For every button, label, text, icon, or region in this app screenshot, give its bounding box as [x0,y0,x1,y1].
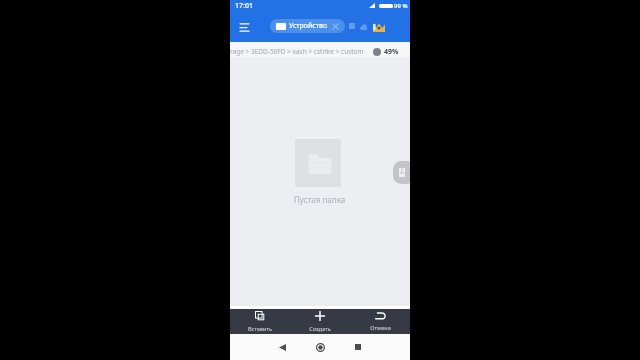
staticText: 17:01 [235,1,253,11]
button[interactable]: Вставить [230,309,290,334]
button[interactable]: Open navigation menu [234,17,254,37]
button[interactable]: Back [272,334,293,360]
staticText: Устройство [289,21,328,31]
staticText: Создать [309,325,331,332]
staticText: 49% [384,47,399,57]
button[interactable]: Recent apps [347,334,368,360]
staticText: Отмена [370,324,391,331]
button[interactable]: Sort files [393,161,410,184]
staticText: Пустая папка [294,194,346,205]
button[interactable]: Устройство [270,19,345,33]
staticText: Вставить [248,325,272,332]
button[interactable]: Отмена [350,309,410,334]
button[interactable]: Grid view [346,20,358,32]
button[interactable]: Создать [290,309,350,334]
staticText: 99 % [394,2,408,10]
button[interactable]: Cloud storage [357,20,370,33]
button[interactable]: Premium [372,20,386,34]
staticText: rage > 3EDD-56FD > xash > cstrike > cust… [230,47,364,56]
button[interactable]: Home [309,334,331,360]
